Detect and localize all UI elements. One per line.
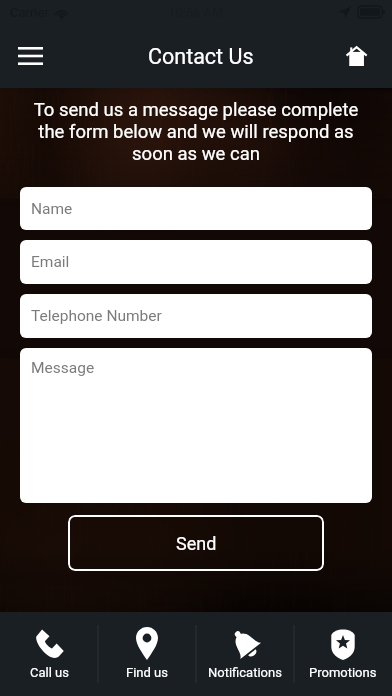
button[interactable]: Name [20, 187, 372, 230]
staticText: Email [31, 253, 70, 271]
button[interactable]: Email [20, 240, 372, 284]
button[interactable]: Call us [0, 612, 98, 696]
staticText: Send [176, 533, 217, 554]
staticText: Promotions [309, 665, 377, 680]
staticText: Telephone Number [31, 307, 162, 325]
staticText: Message [31, 359, 95, 377]
staticText: To send us a message please complete the… [24, 99, 368, 165]
staticText: Name [31, 200, 73, 218]
button[interactable]: Send [68, 515, 324, 571]
staticText: Find us [126, 665, 168, 680]
button[interactable]: Open navigation menu [18, 33, 62, 79]
staticText: Notifications [208, 665, 282, 680]
button[interactable]: Telephone Number [20, 294, 372, 338]
button[interactable]: Home [334, 34, 378, 78]
button[interactable]: Find us [98, 612, 196, 696]
staticText: Call us [30, 665, 69, 680]
button[interactable]: Notifications [196, 612, 294, 696]
button[interactable]: Message [20, 348, 372, 503]
staticText: Contact Us [148, 44, 254, 69]
button[interactable]: Promotions [294, 612, 392, 696]
